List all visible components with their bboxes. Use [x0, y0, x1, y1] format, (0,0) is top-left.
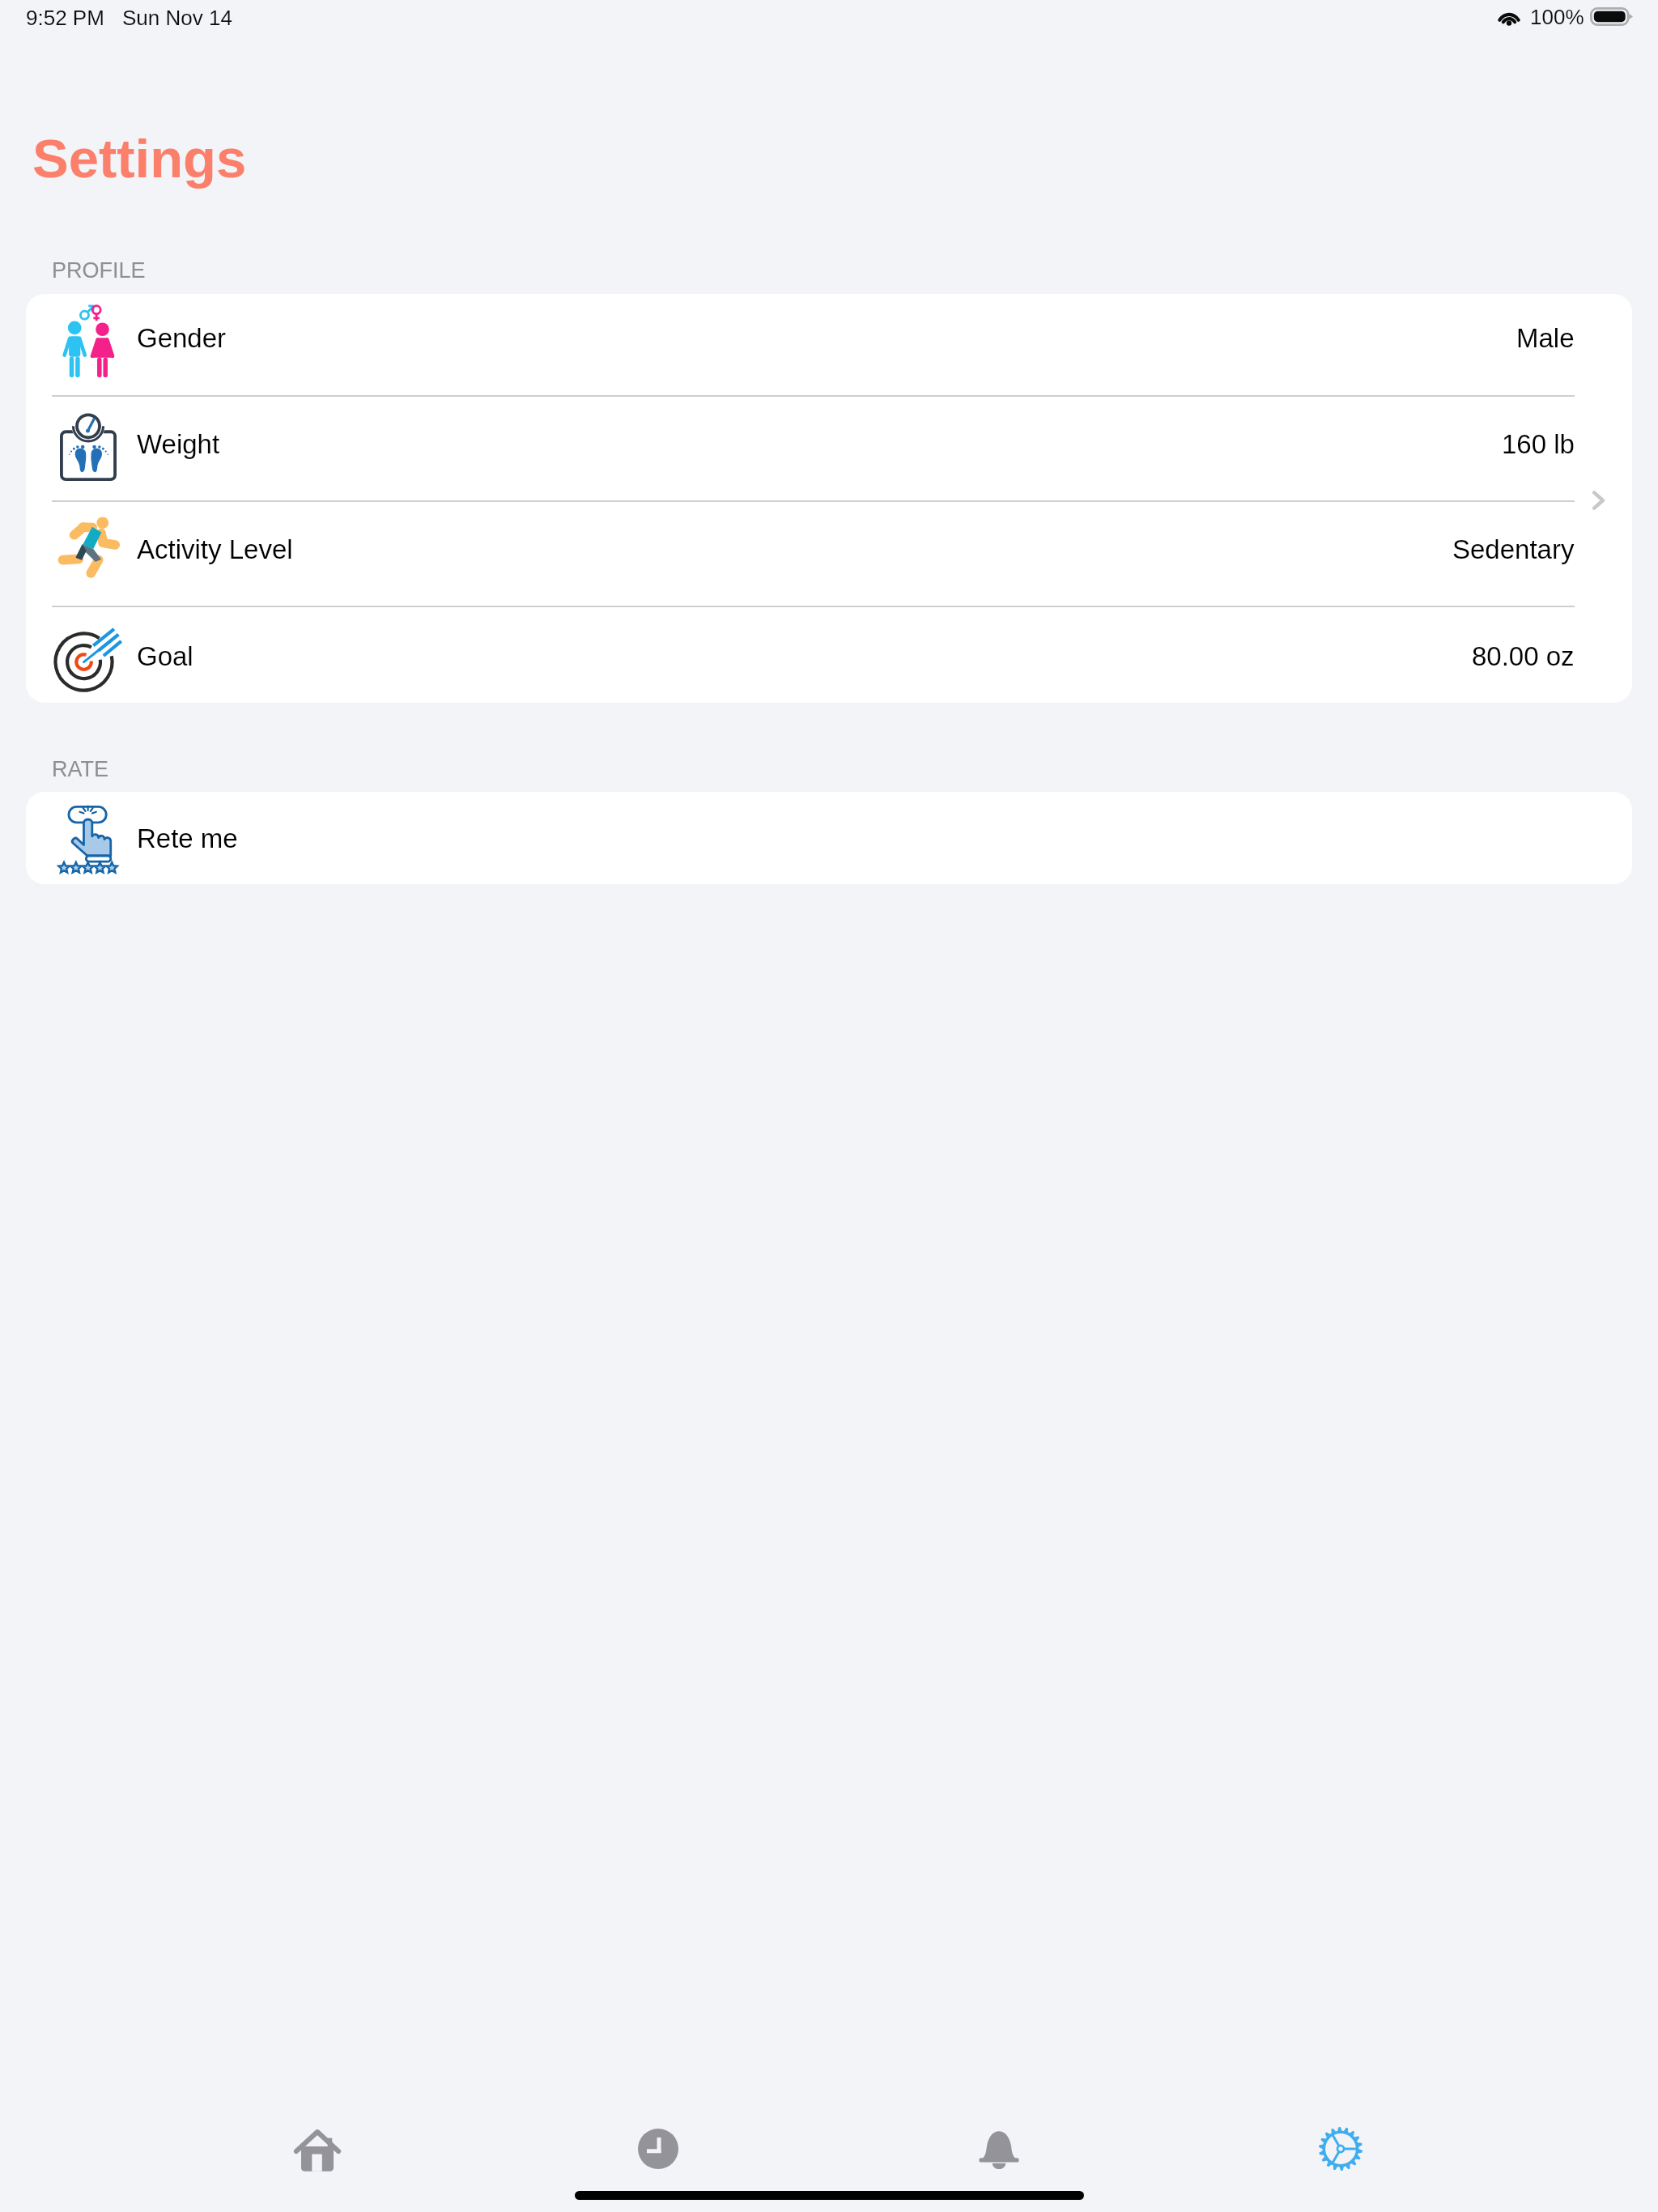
button[interactable]: Reminders: [828, 2108, 1170, 2189]
button[interactable]: Settings: [1170, 2108, 1511, 2189]
staticText: Gender: [137, 323, 227, 353]
button[interactable]: Weight: [26, 397, 1632, 500]
staticText: Activity Level: [137, 534, 293, 564]
button[interactable]: Home: [147, 2108, 487, 2189]
button[interactable]: Goal: [26, 607, 1632, 703]
staticText: Settings: [32, 128, 247, 189]
button[interactable]: Rete me: [26, 792, 1632, 884]
staticText: Male: [1516, 323, 1575, 353]
staticText: Rete me: [137, 823, 238, 853]
staticText: Sun Nov 14: [122, 6, 232, 29]
staticText: Sedentary: [1452, 534, 1575, 564]
staticText: Weight: [137, 429, 220, 459]
staticText: Goal: [137, 641, 193, 671]
staticText: 100%: [1530, 5, 1584, 28]
staticText: 9:52 PM: [26, 6, 104, 29]
button[interactable]: Activity Level: [26, 502, 1632, 606]
button[interactable]: History: [487, 2108, 828, 2189]
staticText: PROFILE: [52, 258, 146, 283]
staticText: 160 lb: [1502, 429, 1575, 459]
button[interactable]: Gender: [26, 294, 1632, 395]
staticText: 80.00 oz: [1472, 641, 1575, 671]
staticText: RATE: [52, 757, 109, 781]
